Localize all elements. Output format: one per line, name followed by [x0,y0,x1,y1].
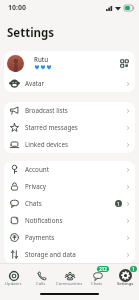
button[interactable]: QR code [118,57,131,70]
staticText: Linked devices [25,140,68,149]
button[interactable]: Account [4,161,135,178]
button[interactable]: Linked devices [4,136,135,153]
staticText: Communities [56,281,83,287]
staticText: Chats [91,281,103,287]
staticText: 1 [132,266,135,272]
staticText: Updates [5,281,22,287]
button[interactable]: Storage and data [4,246,135,263]
button[interactable]: Communities [55,266,83,291]
staticText: Storage and data [25,250,76,259]
staticText: Settings [117,281,134,287]
button[interactable]: Starred messages [4,119,135,136]
staticText: Settings [7,25,55,41]
button[interactable]: Broadcast lists [4,102,135,119]
staticText: 10:00 [8,3,26,13]
staticText: Broadcast lists [25,106,68,115]
staticText: Chats [25,199,42,208]
staticText: Calls [36,281,46,287]
staticText: Payments [25,233,55,242]
button[interactable]: 212 [83,266,111,291]
staticText: Privacy [25,182,47,191]
button[interactable]: Avatar [4,75,135,92]
button[interactable]: Rutu [4,51,135,75]
button[interactable]: Payments [4,229,135,246]
button[interactable]: Calls [27,266,55,291]
button[interactable]: Privacy [4,178,135,195]
button[interactable]: Updates [0,266,27,291]
button[interactable]: Notifications [4,212,135,229]
staticText: 212 [99,266,107,272]
staticText: Notifications [25,216,63,225]
staticText: 1 [117,201,120,207]
staticText: Rutu [34,55,49,63]
staticText: Starred messages [25,123,78,132]
staticText: Avatar [25,79,45,88]
button[interactable]: 1 [111,266,139,291]
button[interactable]: Chats [4,195,135,212]
staticText: Account [25,165,49,174]
